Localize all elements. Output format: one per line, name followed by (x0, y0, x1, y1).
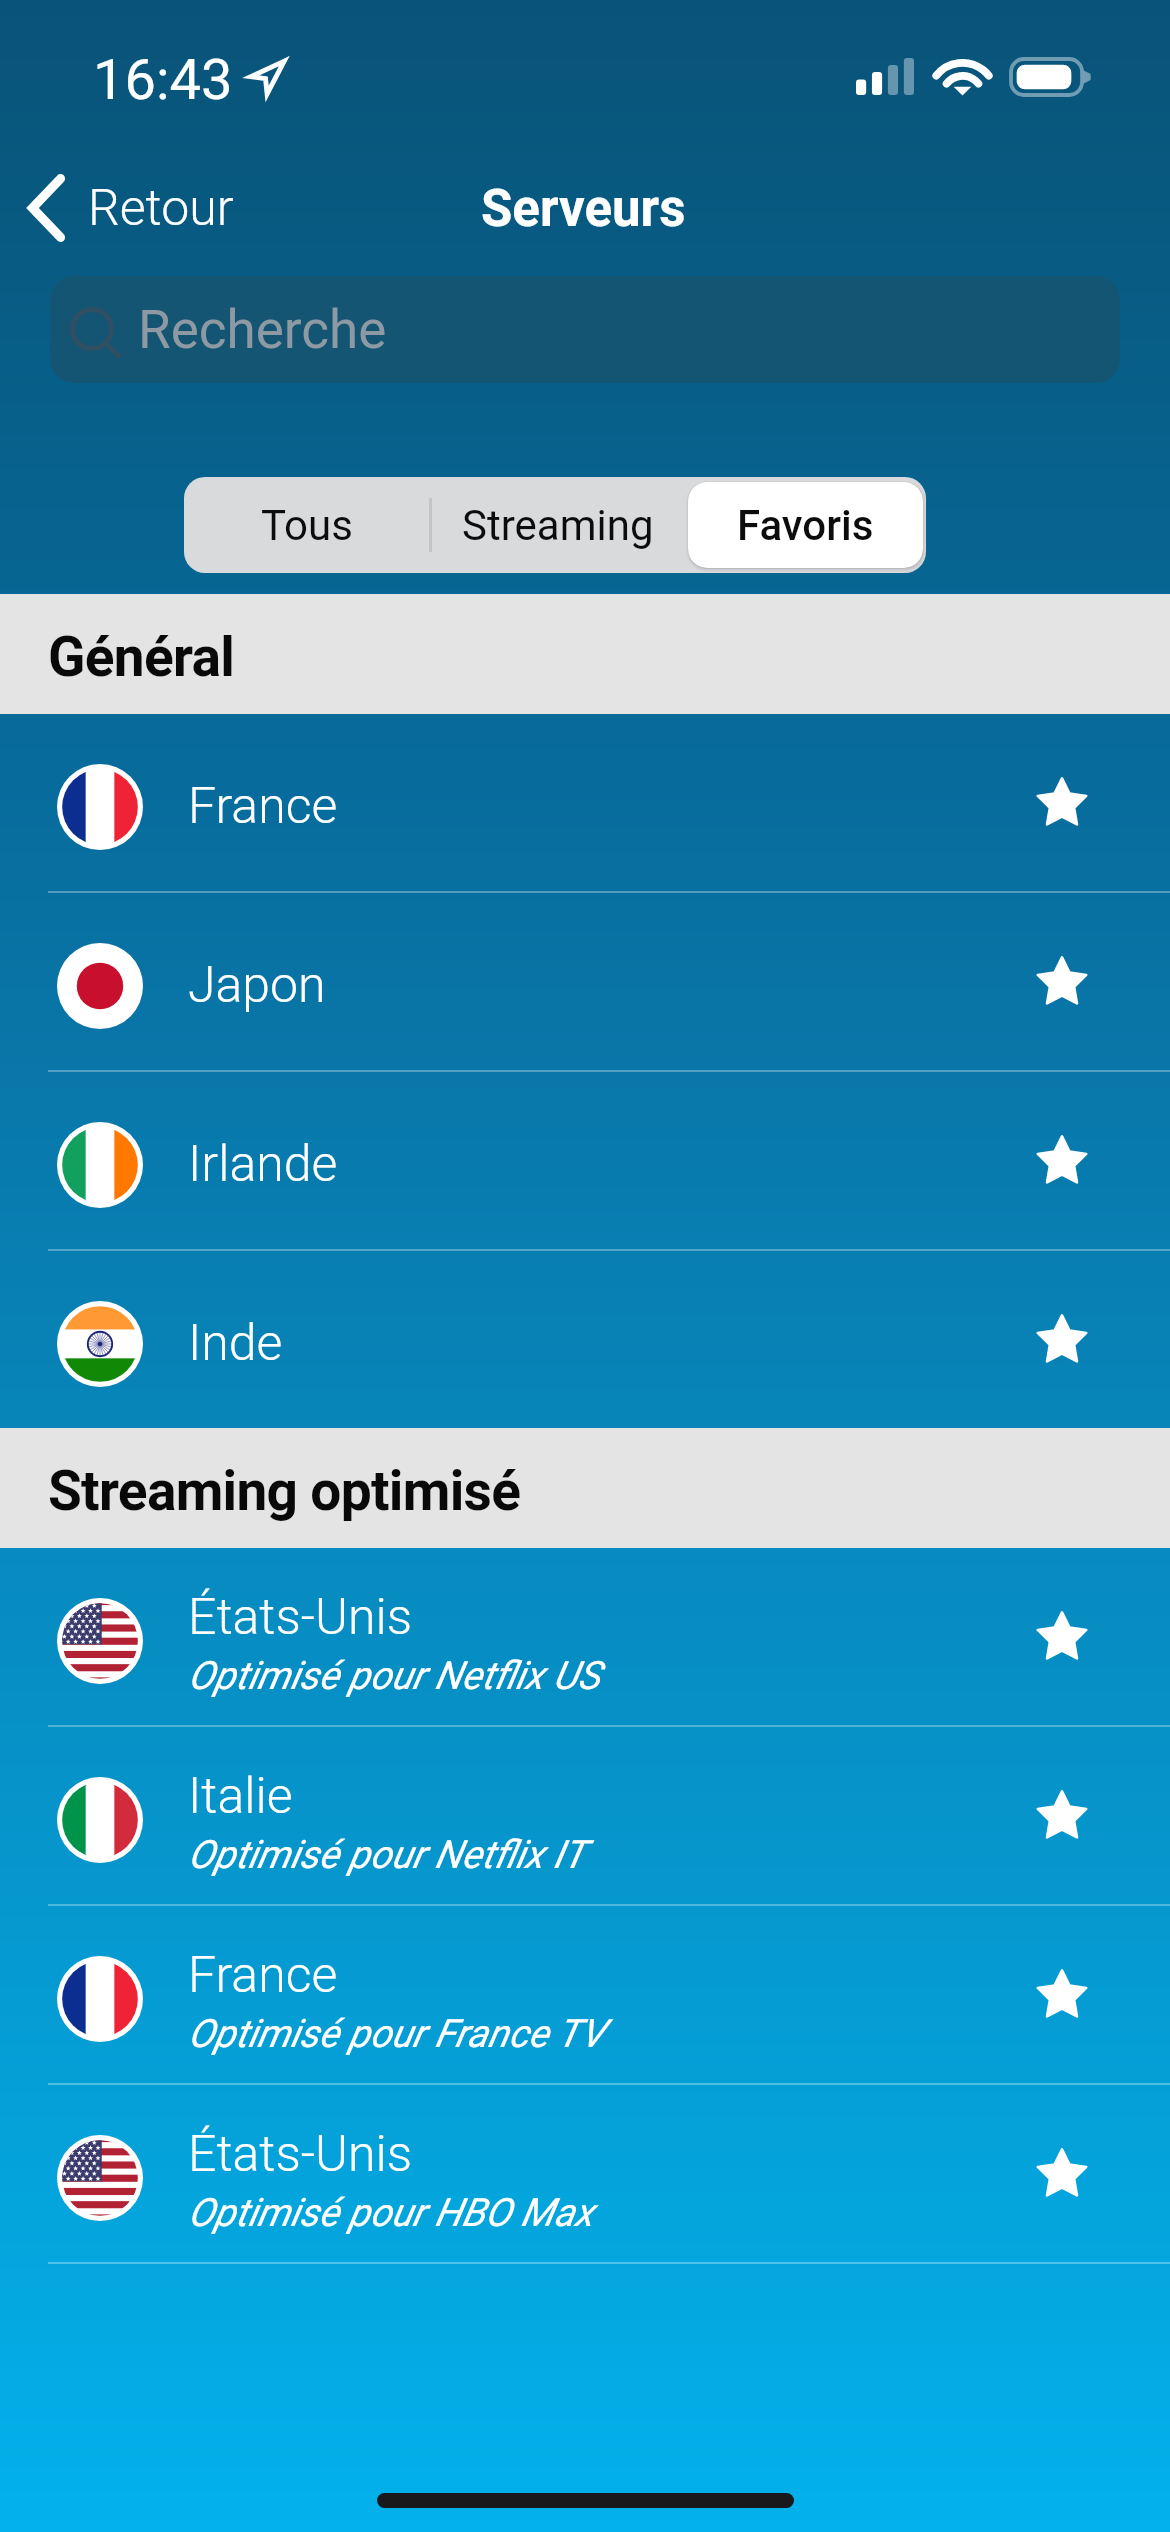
button[interactable]: Recherche (50, 276, 1120, 383)
button[interactable]: États-Unis (0, 1548, 1170, 1725)
staticText: États-Unis (188, 2125, 413, 2184)
staticText: Irlande (188, 1135, 338, 1194)
button[interactable]: Favori (1004, 1758, 1120, 1874)
button[interactable]: Favori (1004, 924, 1120, 1040)
staticText: États-Unis (188, 1588, 413, 1647)
button[interactable]: États-Unis (0, 2085, 1170, 2262)
button[interactable]: Favori (1004, 2116, 1120, 2232)
button[interactable]: Favori (1004, 1282, 1120, 1398)
staticText: Streaming (462, 501, 654, 550)
staticText: Optimisé pour HBO Max (188, 2190, 594, 2236)
button[interactable]: Tous (187, 482, 427, 568)
staticText: Serveurs (481, 179, 686, 239)
staticText: 16:43 (93, 47, 233, 113)
staticText: Optimisé pour Netflix US (188, 1653, 600, 1699)
button[interactable]: Irlande (0, 1072, 1170, 1249)
staticText: Optimisé pour France TV (188, 2011, 605, 2057)
staticText: Favoris (737, 501, 874, 550)
staticText: Optimisé pour Netflix IT (188, 1832, 586, 1878)
staticText: Retour (88, 179, 234, 238)
staticText: France (188, 1946, 338, 2005)
button[interactable]: France (0, 1906, 1170, 2083)
staticText: Général (48, 625, 235, 689)
button[interactable]: France (0, 714, 1170, 891)
staticText: Recherche (138, 299, 387, 361)
button[interactable]: Retour (0, 165, 252, 251)
staticText: Japon (188, 956, 326, 1015)
button[interactable]: Japon (0, 893, 1170, 1070)
button[interactable]: Favoris (688, 482, 923, 568)
staticText: France (188, 777, 338, 836)
button[interactable]: Favori (1004, 1937, 1120, 2053)
button[interactable]: Inde (0, 1251, 1170, 1428)
button[interactable]: Favori (1004, 1579, 1120, 1695)
button[interactable]: Streaming (433, 482, 682, 568)
staticText: Italie (188, 1767, 293, 1826)
staticText: Inde (188, 1314, 283, 1373)
button[interactable]: Favori (1004, 1103, 1120, 1219)
button[interactable]: Favori (1004, 745, 1120, 861)
staticText: Tous (261, 501, 353, 550)
button[interactable]: Italie (0, 1727, 1170, 1904)
staticText: Streaming optimisé (48, 1459, 521, 1523)
